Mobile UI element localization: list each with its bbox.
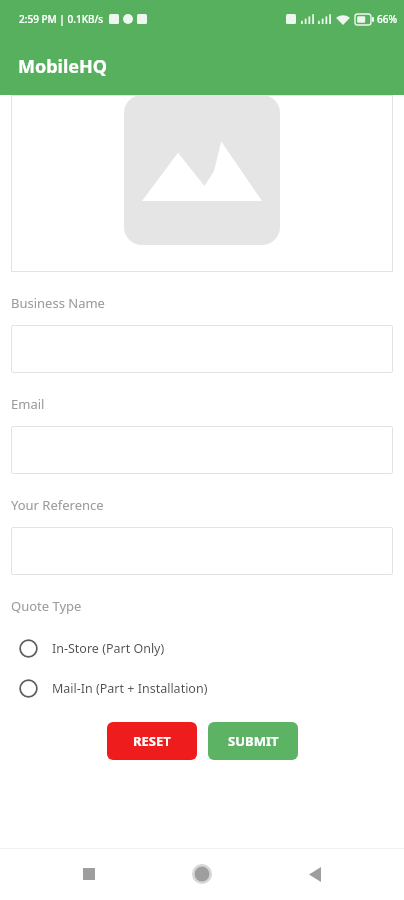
button[interactable] <box>11 325 393 373</box>
button[interactable]: Recents <box>65 850 113 898</box>
button[interactable]: Home <box>178 850 226 898</box>
staticText: MobileHQ <box>18 54 108 79</box>
button[interactable]: Back <box>291 850 339 898</box>
button[interactable]: RESET <box>107 722 197 760</box>
button[interactable]: In-Store (Part Only) <box>11 628 393 668</box>
staticText: In-Store (Part Only) <box>52 640 165 657</box>
staticText: Quote Type <box>11 597 82 615</box>
staticText: 2:59 PM | 0.1KB/s <box>19 12 104 26</box>
staticText: 66% <box>377 12 397 26</box>
staticText: Business Name <box>11 294 105 312</box>
button[interactable]: Upload image <box>11 95 393 272</box>
button[interactable] <box>11 426 393 474</box>
button[interactable]: SUBMIT <box>208 722 298 760</box>
staticText: SUBMIT <box>228 732 279 750</box>
staticText: Your Reference <box>11 496 104 514</box>
button[interactable]: Mail-In (Part + Installation) <box>11 668 393 708</box>
staticText: RESET <box>133 732 171 750</box>
staticText: Mail-In (Part + Installation) <box>52 680 208 697</box>
staticText: Email <box>11 395 45 413</box>
button[interactable] <box>11 527 393 575</box>
